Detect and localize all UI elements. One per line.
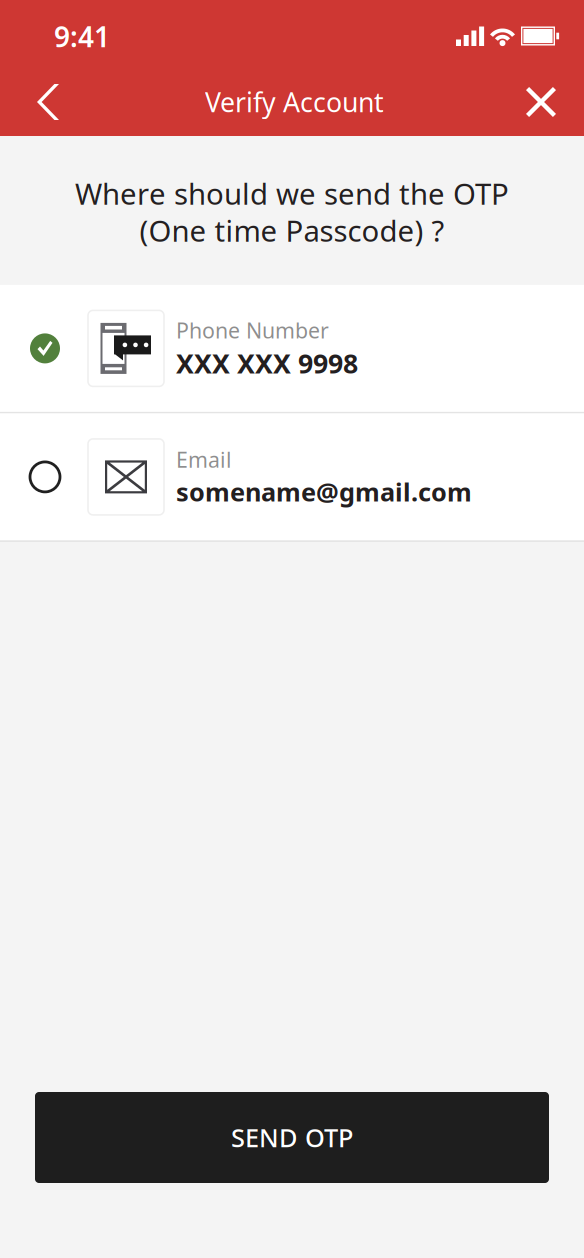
button[interactable]: Close [509,69,573,135]
staticText: somename@gmail.com [176,475,472,508]
staticText: (One time Passcode) ? [139,211,444,250]
staticText: Phone Number [176,316,329,344]
staticText: Verify Account [205,84,384,120]
staticText: SEND OTP [231,1121,353,1154]
button[interactable]: Back [16,69,80,135]
staticText: Email [176,445,232,474]
staticText: 9:41 [54,18,110,55]
staticText: XXX XXX 9998 [176,345,358,381]
button[interactable]: SEND OTP [35,1092,549,1183]
button[interactable]: Phone Number XXX XXX 9998, selected [0,285,584,412]
button[interactable]: Email somename@gmail.com [0,413,584,540]
staticText: Where should we send the OTP [75,174,509,213]
